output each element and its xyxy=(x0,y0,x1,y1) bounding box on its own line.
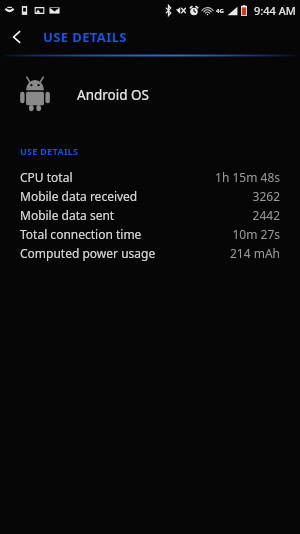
staticText: Computed power usage xyxy=(20,245,156,261)
staticText: Mobile data sent xyxy=(20,207,115,223)
button[interactable]: Back xyxy=(0,20,34,54)
button[interactable]: Total connection time xyxy=(0,224,300,243)
staticText: 2442 xyxy=(252,207,280,223)
staticText: CPU total xyxy=(20,169,73,185)
staticText: Mobile data received xyxy=(20,188,138,204)
staticText: Android OS xyxy=(77,86,149,104)
button[interactable]: CPU total xyxy=(0,167,300,186)
staticText: 10m 27s xyxy=(232,226,280,242)
staticText: USE DETAILS xyxy=(43,28,127,46)
staticText: 3262 xyxy=(252,188,280,204)
button[interactable]: Mobile data received xyxy=(0,186,300,205)
staticText: 4G xyxy=(216,7,224,15)
button[interactable]: Mobile data sent xyxy=(0,205,300,224)
staticText: 214 mAh xyxy=(229,245,280,261)
button[interactable]: Computed power usage xyxy=(0,243,300,262)
button[interactable]: Android OS xyxy=(0,71,300,119)
staticText: USE DETAILS xyxy=(20,145,79,157)
staticText: 1h 15m 48s xyxy=(215,169,280,185)
staticText: 9:44 AM xyxy=(254,3,296,18)
staticText: Total connection time xyxy=(20,226,142,242)
